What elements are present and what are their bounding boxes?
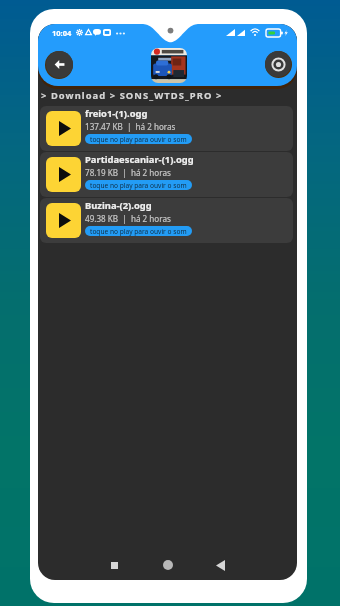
button[interactable]: Play bbox=[46, 111, 81, 146]
button[interactable]: App icon bbox=[151, 48, 187, 83]
staticText: Buzina-(2).ogg bbox=[85, 199, 152, 212]
staticText: freio1-(1).ogg bbox=[85, 107, 148, 120]
button[interactable]: Home bbox=[154, 551, 182, 579]
button[interactable]: Play bbox=[40, 152, 293, 197]
staticText: toque no play para ouvir o som bbox=[90, 181, 187, 190]
button[interactable]: Play bbox=[46, 157, 81, 192]
button[interactable]: Back bbox=[46, 51, 73, 78]
staticText: toque no play para ouvir o som bbox=[90, 227, 187, 236]
staticText: > Download > SONS_WTDS_PRO > bbox=[41, 89, 223, 102]
button[interactable]: Refresh bbox=[265, 51, 291, 77]
button[interactable]: Back bbox=[206, 551, 234, 579]
staticText: Partidaescaniar-(1).ogg bbox=[85, 153, 194, 166]
button[interactable]: Play bbox=[40, 198, 293, 243]
button[interactable]: Play bbox=[46, 203, 81, 238]
button[interactable]: Recent apps bbox=[100, 551, 128, 579]
staticText: 49.38 KB | há 2 horas bbox=[85, 213, 171, 224]
staticText: 137.47 KB | há 2 horas bbox=[85, 121, 176, 132]
staticText: 10:04 bbox=[52, 28, 72, 38]
staticText: toque no play para ouvir o som bbox=[90, 135, 187, 144]
button[interactable]: Play bbox=[40, 106, 293, 151]
staticText: 78.19 KB | há 2 horas bbox=[85, 167, 171, 178]
